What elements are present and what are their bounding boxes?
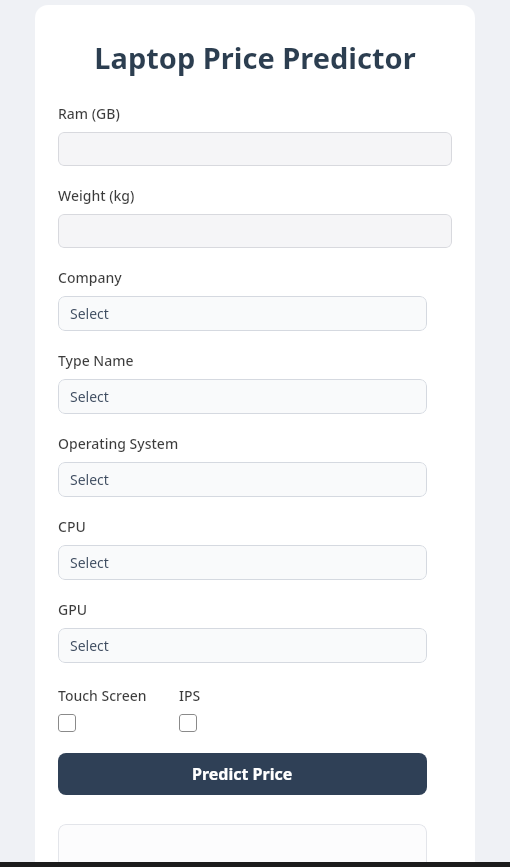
button[interactable]: Text input <box>58 214 452 248</box>
staticText: Select <box>70 387 109 406</box>
staticText: Touch Screen <box>58 686 147 705</box>
staticText: Ram (GB) <box>58 104 120 123</box>
staticText: Laptop Price Predictor <box>58 38 452 77</box>
staticText: Company <box>58 268 122 287</box>
button[interactable]: Select <box>58 462 427 497</box>
button[interactable]: Select <box>58 628 427 663</box>
staticText: Type Name <box>58 351 134 370</box>
button[interactable]: Predict Price <box>58 753 427 795</box>
staticText: Predict Price <box>192 763 293 785</box>
button[interactable]: Checkbox <box>179 714 197 732</box>
button[interactable]: Text input <box>58 132 452 166</box>
staticText: Select <box>70 470 109 489</box>
staticText: Select <box>70 636 109 655</box>
staticText: Select <box>70 553 109 572</box>
button[interactable]: Checkbox <box>58 714 76 732</box>
button[interactable]: Select <box>58 296 427 331</box>
staticText: CPU <box>58 517 86 536</box>
button[interactable]: Select <box>58 545 427 580</box>
staticText: IPS <box>179 686 201 705</box>
staticText: Select <box>70 304 109 323</box>
staticText: Weight (kg) <box>58 186 135 205</box>
staticText: Operating System <box>58 434 179 453</box>
button[interactable]: Select <box>58 379 427 414</box>
staticText: GPU <box>58 600 88 619</box>
